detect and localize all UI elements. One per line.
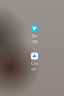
staticText: Swoop [31, 33, 37, 44]
button[interactable]: Swoop [31, 25, 38, 44]
staticText: Cloud [31, 61, 38, 71]
button[interactable]: Cloud [31, 53, 38, 71]
